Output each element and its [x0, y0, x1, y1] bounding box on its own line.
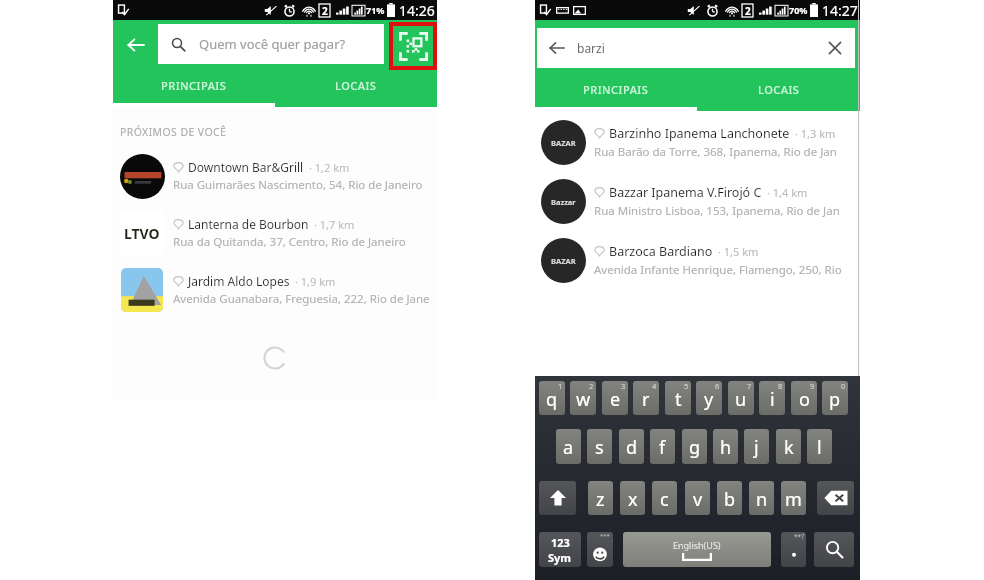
button[interactable]: r	[633, 381, 659, 415]
button[interactable]: s	[587, 429, 612, 464]
button[interactable]: c	[652, 481, 677, 515]
staticText: Rua da Quitanda, 37, Centro, Rio de Jane…	[173, 234, 406, 250]
staticText: h	[720, 435, 732, 460]
staticText: 1	[558, 381, 563, 391]
button[interactable]: l	[807, 429, 832, 464]
button[interactable]: v	[685, 481, 710, 515]
staticText: 123	[551, 535, 570, 550]
button[interactable]: t	[665, 381, 691, 415]
button[interactable]: k	[776, 429, 801, 464]
staticText: e	[610, 387, 621, 412]
button[interactable]: Period	[781, 532, 806, 567]
staticText: · 1,5 km	[718, 244, 759, 259]
button[interactable]: b	[717, 481, 742, 515]
button[interactable]: x	[620, 481, 645, 515]
staticText: LTVO	[124, 224, 160, 243]
button[interactable]: LTVO	[113, 204, 437, 261]
staticText: o	[799, 387, 810, 412]
staticText: c	[660, 487, 669, 512]
staticText: · 1,7 km	[314, 217, 355, 232]
staticText: PRINCIPAIS	[583, 82, 649, 97]
button[interactable]: Back	[537, 28, 577, 68]
staticText: g	[689, 435, 701, 460]
button[interactable]: d	[619, 429, 644, 464]
button[interactable]: Emoji	[587, 532, 613, 567]
button[interactable]: LOCAIS	[697, 74, 860, 111]
button[interactable]: y	[696, 381, 722, 415]
staticText: Jardim Aldo Lopes	[188, 273, 290, 289]
staticText: ***	[600, 532, 610, 540]
staticText: 3	[621, 381, 626, 391]
button[interactable]: PRINCIPAIS	[113, 70, 275, 107]
staticText: · 1,9 km	[295, 274, 336, 289]
button[interactable]: Quem você quer pagar?	[158, 24, 384, 64]
staticText: Bazzar Ipanema V.Firojó C	[609, 184, 762, 201]
button[interactable]: q	[539, 381, 565, 415]
button[interactable]: PRINCIPAIS	[535, 74, 697, 111]
staticText: Quem você quer pagar?	[199, 35, 346, 53]
staticText: b	[724, 487, 736, 512]
staticText: 0	[841, 381, 846, 391]
button[interactable]: e	[602, 381, 628, 415]
staticText: z	[596, 487, 605, 512]
button[interactable]: LOCAIS	[275, 70, 437, 107]
button[interactable]: a	[556, 429, 581, 464]
button[interactable]: Space	[623, 532, 771, 567]
staticText: n	[756, 487, 768, 512]
staticText: BAZAR	[551, 138, 576, 148]
staticText: l	[817, 435, 822, 460]
button[interactable]: Symbols	[539, 532, 581, 567]
staticText: Bazzar	[551, 197, 576, 207]
staticText: m	[785, 487, 802, 512]
staticText: i	[770, 387, 775, 412]
staticText: PRÓXIMOS DE VOCÊ	[120, 125, 227, 139]
button[interactable]: BAZAR	[535, 113, 860, 172]
staticText: 8	[778, 381, 783, 391]
staticText: 4	[652, 381, 657, 391]
button[interactable]: Clear	[815, 28, 855, 68]
staticText: x	[628, 487, 638, 512]
button[interactable]: h	[713, 429, 738, 464]
staticText: k	[784, 435, 794, 460]
button[interactable]: u	[728, 381, 754, 415]
staticText: Sym	[548, 550, 572, 565]
button[interactable]: m	[781, 481, 806, 515]
staticText: Rua Guimarães Nascimento, 54, Rio de Jan…	[173, 177, 423, 193]
staticText: y	[704, 387, 714, 412]
staticText: barzi	[577, 40, 605, 56]
staticText: 7	[747, 381, 752, 391]
button[interactable]: z	[588, 481, 613, 515]
staticText: 70%	[789, 4, 808, 16]
staticText: 2	[745, 4, 751, 17]
button[interactable]: n	[749, 481, 774, 515]
button[interactable]: Search	[814, 532, 854, 567]
staticText: p	[829, 387, 841, 412]
button[interactable]: Jardim Aldo Lopes	[113, 261, 437, 318]
staticText: · 1,3 km	[795, 126, 836, 141]
staticText: **?	[794, 532, 804, 541]
staticText: LOCAIS	[758, 82, 800, 97]
button[interactable]: Shift	[539, 481, 576, 515]
button[interactable]: Backspace	[817, 481, 854, 515]
button[interactable]: Scan QR code	[386, 22, 439, 70]
staticText: f	[659, 435, 666, 460]
staticText: · 1,4 km	[767, 185, 808, 200]
button[interactable]: i	[759, 381, 785, 415]
button[interactable]: o	[791, 381, 817, 415]
button[interactable]: Bazzar	[535, 172, 860, 231]
button[interactable]: Back	[113, 22, 158, 67]
button[interactable]: f	[650, 429, 675, 464]
staticText: Barzinho Ipanema Lanchonete	[609, 125, 790, 142]
staticText: Rua Barão da Torre, 368, Ipanema, Rio de…	[594, 144, 837, 160]
button[interactable]: j	[744, 429, 769, 464]
button[interactable]: w	[570, 381, 596, 415]
button[interactable]: g	[682, 429, 707, 464]
button[interactable]: p	[822, 381, 848, 415]
staticText: PRINCIPAIS	[161, 78, 227, 93]
staticText: u	[735, 387, 747, 412]
staticText: 71%	[366, 4, 385, 16]
staticText: BAZAR	[551, 256, 576, 266]
staticText: Downtown Bar&Grill	[188, 159, 304, 175]
button[interactable]: BAZAR	[535, 231, 860, 290]
button[interactable]: Downtown Bar&Grill	[113, 147, 437, 204]
